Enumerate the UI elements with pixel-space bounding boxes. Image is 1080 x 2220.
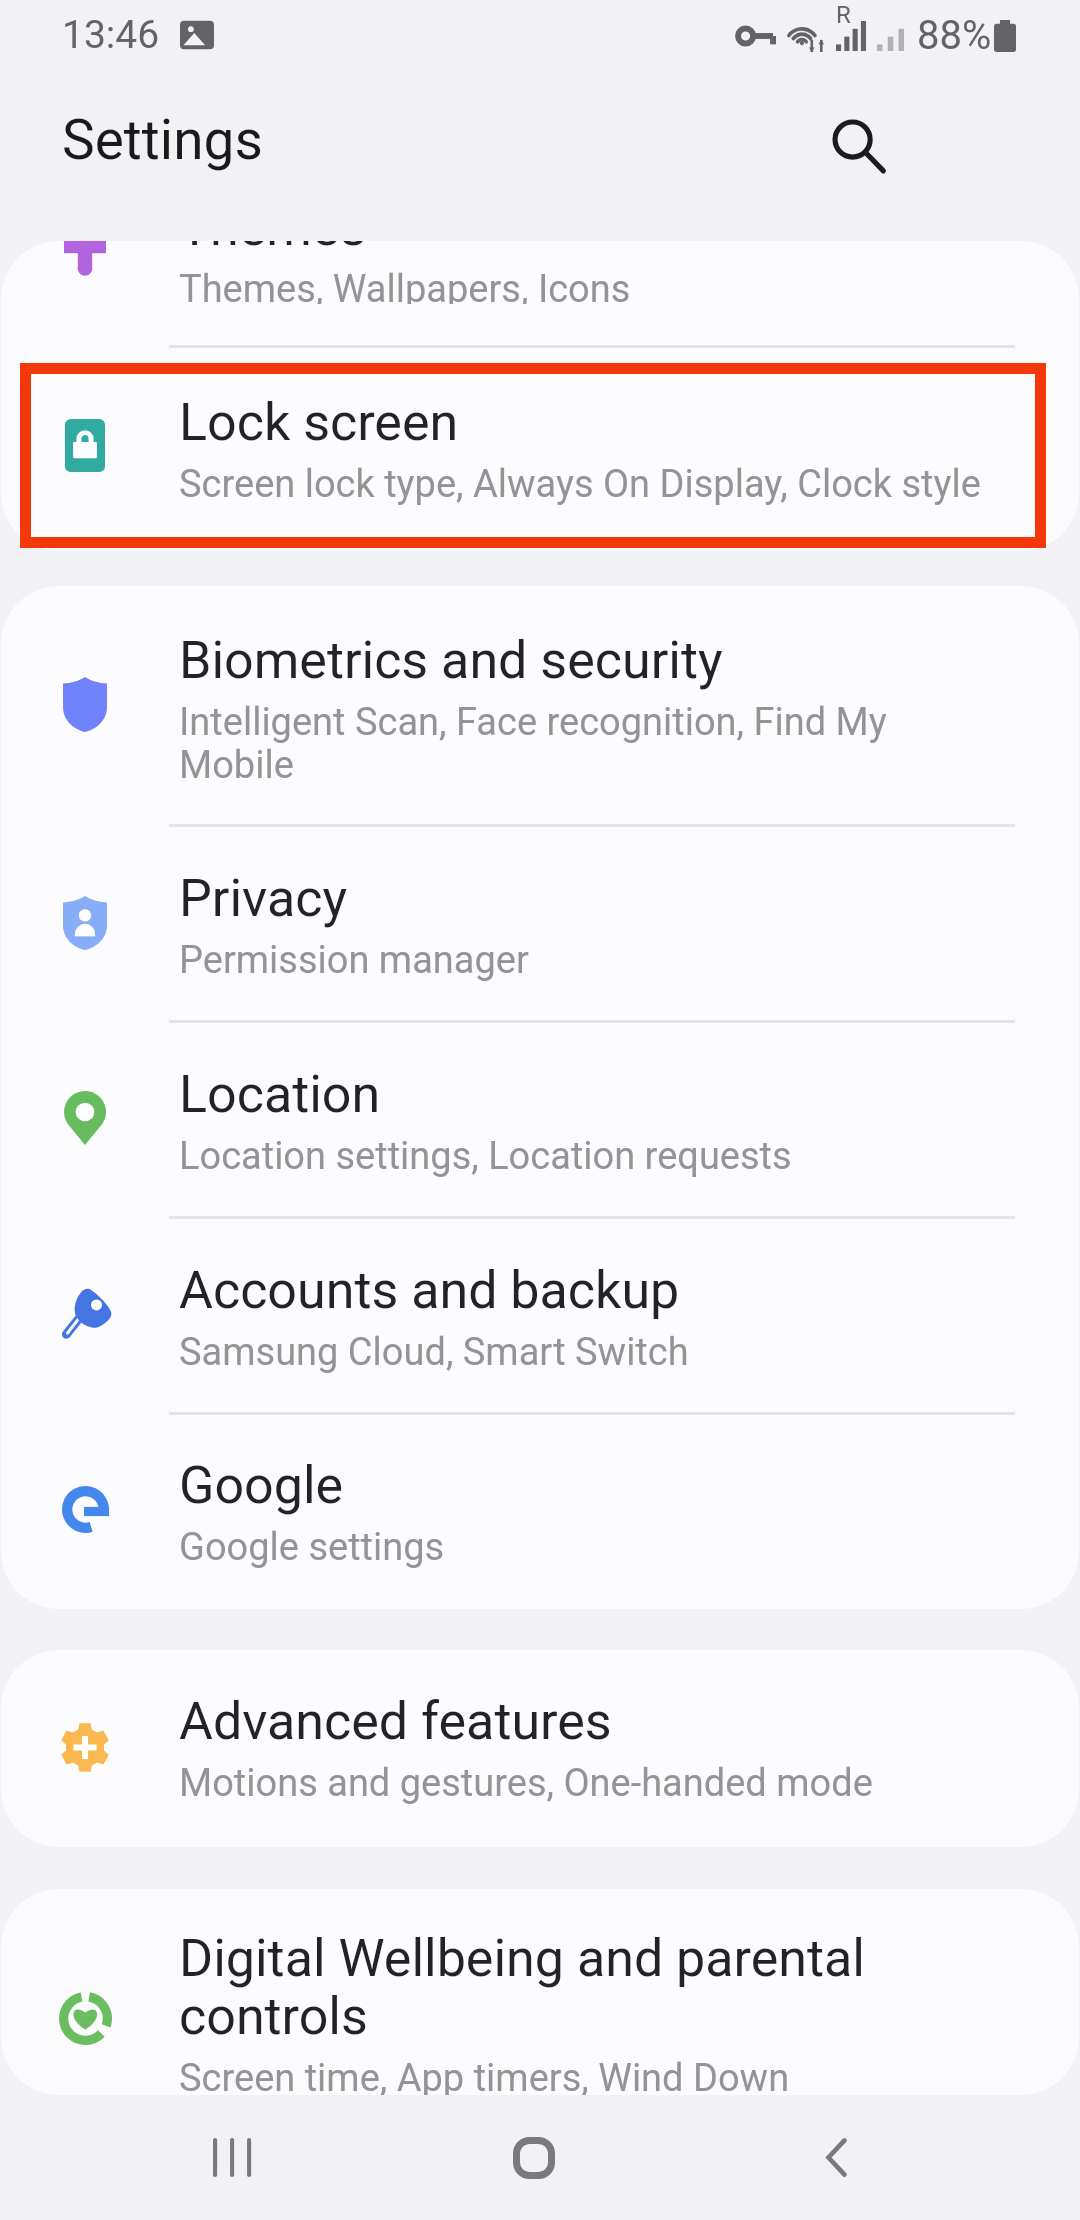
button[interactable]: Digital Wellbeing and parental controls: [1, 1889, 1079, 2095]
staticText: Samsung Cloud, Smart Switch: [179, 1330, 689, 1375]
staticText: Themes, Wallpapers, Icons: [179, 267, 631, 304]
button[interactable]: Recent apps: [142, 2095, 322, 2220]
button[interactable]: Search: [812, 100, 904, 192]
staticText: Location: [179, 1064, 381, 1125]
staticText: Lock screen: [179, 392, 459, 453]
staticText: R: [836, 1, 851, 29]
staticText: Advanced features: [179, 1691, 612, 1752]
button[interactable]: Biometrics and security: [1, 586, 1079, 827]
button[interactable]: Themes: [1, 241, 1079, 348]
button[interactable]: Home: [444, 2095, 624, 2220]
staticText: Motions and gestures, One-handed mode: [179, 1761, 873, 1806]
button[interactable]: Advanced features: [1, 1650, 1079, 1847]
staticText: Accounts and backup: [179, 1260, 680, 1321]
staticText: 13:46: [62, 12, 160, 58]
staticText: Screen lock type, Always On Display, Clo…: [179, 462, 981, 507]
staticText: Location settings, Location requests: [179, 1134, 792, 1179]
button[interactable]: Google: [1, 1415, 1079, 1609]
staticText: Themes: [179, 241, 367, 258]
staticText: Google settings: [179, 1525, 445, 1570]
button[interactable]: Lock screen: [1, 348, 1079, 551]
staticText: Digital Wellbeing and parental controls: [179, 1928, 879, 2047]
staticText: Intelligent Scan, Face recognition, Find…: [179, 700, 901, 787]
staticText: Privacy: [179, 868, 347, 929]
staticText: Screen time, App timers, Wind Down: [179, 2056, 790, 2095]
staticText: Google: [179, 1455, 344, 1516]
staticText: 88%: [917, 12, 992, 59]
button[interactable]: Privacy: [1, 827, 1079, 1023]
staticText: Biometrics and security: [179, 630, 723, 691]
button[interactable]: Location: [1, 1023, 1079, 1219]
staticText: Settings: [62, 108, 263, 172]
staticText: Permission manager: [179, 938, 529, 983]
button[interactable]: Accounts and backup: [1, 1219, 1079, 1415]
button[interactable]: Back: [746, 2095, 926, 2220]
